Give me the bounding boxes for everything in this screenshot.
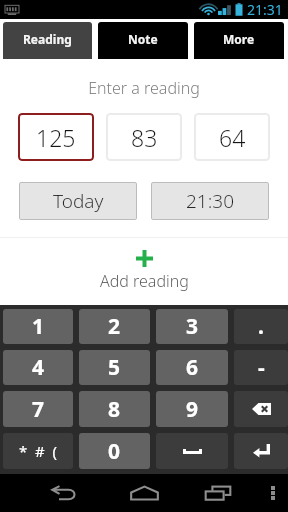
button[interactable]: 1 — [3, 309, 73, 344]
button[interactable]: Today — [19, 182, 137, 220]
button[interactable]: Recents — [196, 474, 240, 512]
button[interactable]: Space — [156, 433, 228, 469]
staticText: More — [223, 31, 255, 47]
button[interactable]: More — [194, 22, 284, 59]
button[interactable]: 6 — [156, 350, 228, 385]
staticText: 7 — [32, 395, 45, 424]
button[interactable]: 83 — [106, 113, 182, 161]
staticText: 21:31 — [247, 0, 283, 19]
button[interactable]: 3 — [156, 309, 228, 344]
staticText: 64 — [219, 122, 246, 153]
button[interactable]: Home — [122, 474, 166, 512]
button[interactable]: More options — [257, 474, 288, 512]
staticText: 21:30 — [186, 188, 235, 214]
button[interactable]: 2 — [79, 309, 150, 344]
button[interactable]: 5 — [79, 350, 150, 385]
staticText: * # ( — [19, 441, 58, 461]
button[interactable]: 7 — [3, 391, 73, 427]
button[interactable]: Add reading — [0, 250, 288, 292]
button[interactable]: 64 — [194, 113, 270, 161]
staticText: 6 — [186, 353, 199, 382]
button[interactable]: 21:30 — [151, 182, 269, 220]
staticText: - — [258, 353, 265, 382]
button[interactable]: 0 — [79, 433, 150, 469]
staticText: 2 — [108, 312, 121, 341]
staticText: 0 — [108, 437, 121, 466]
button[interactable]: 8 — [79, 391, 150, 427]
staticText: Note — [128, 31, 158, 47]
button[interactable]: * # ( — [3, 433, 73, 469]
staticText: 4 — [32, 353, 45, 382]
button[interactable]: Note — [98, 22, 188, 59]
button[interactable]: 4 — [3, 350, 73, 385]
staticText: 3 — [186, 312, 199, 341]
staticText: 5 — [108, 353, 121, 382]
button[interactable]: Enter — [234, 433, 288, 469]
button[interactable]: 9 — [156, 391, 228, 427]
staticText: Add reading — [100, 270, 189, 292]
staticText: Enter a reading — [0, 77, 288, 99]
staticText: 1 — [32, 312, 45, 341]
staticText: 83 — [131, 122, 158, 153]
staticText: . — [258, 312, 264, 341]
button[interactable]: 125 — [18, 113, 94, 161]
button[interactable]: Reading — [3, 22, 92, 59]
staticText: Today — [53, 188, 104, 214]
staticText: Reading — [23, 31, 72, 47]
button[interactable]: Back — [41, 474, 85, 512]
button[interactable]: . — [234, 309, 288, 344]
button[interactable]: Backspace — [234, 391, 288, 427]
staticText: 125 — [36, 122, 76, 153]
staticText: 8 — [108, 395, 121, 424]
staticText: 9 — [186, 395, 199, 424]
button[interactable]: - — [234, 350, 288, 385]
